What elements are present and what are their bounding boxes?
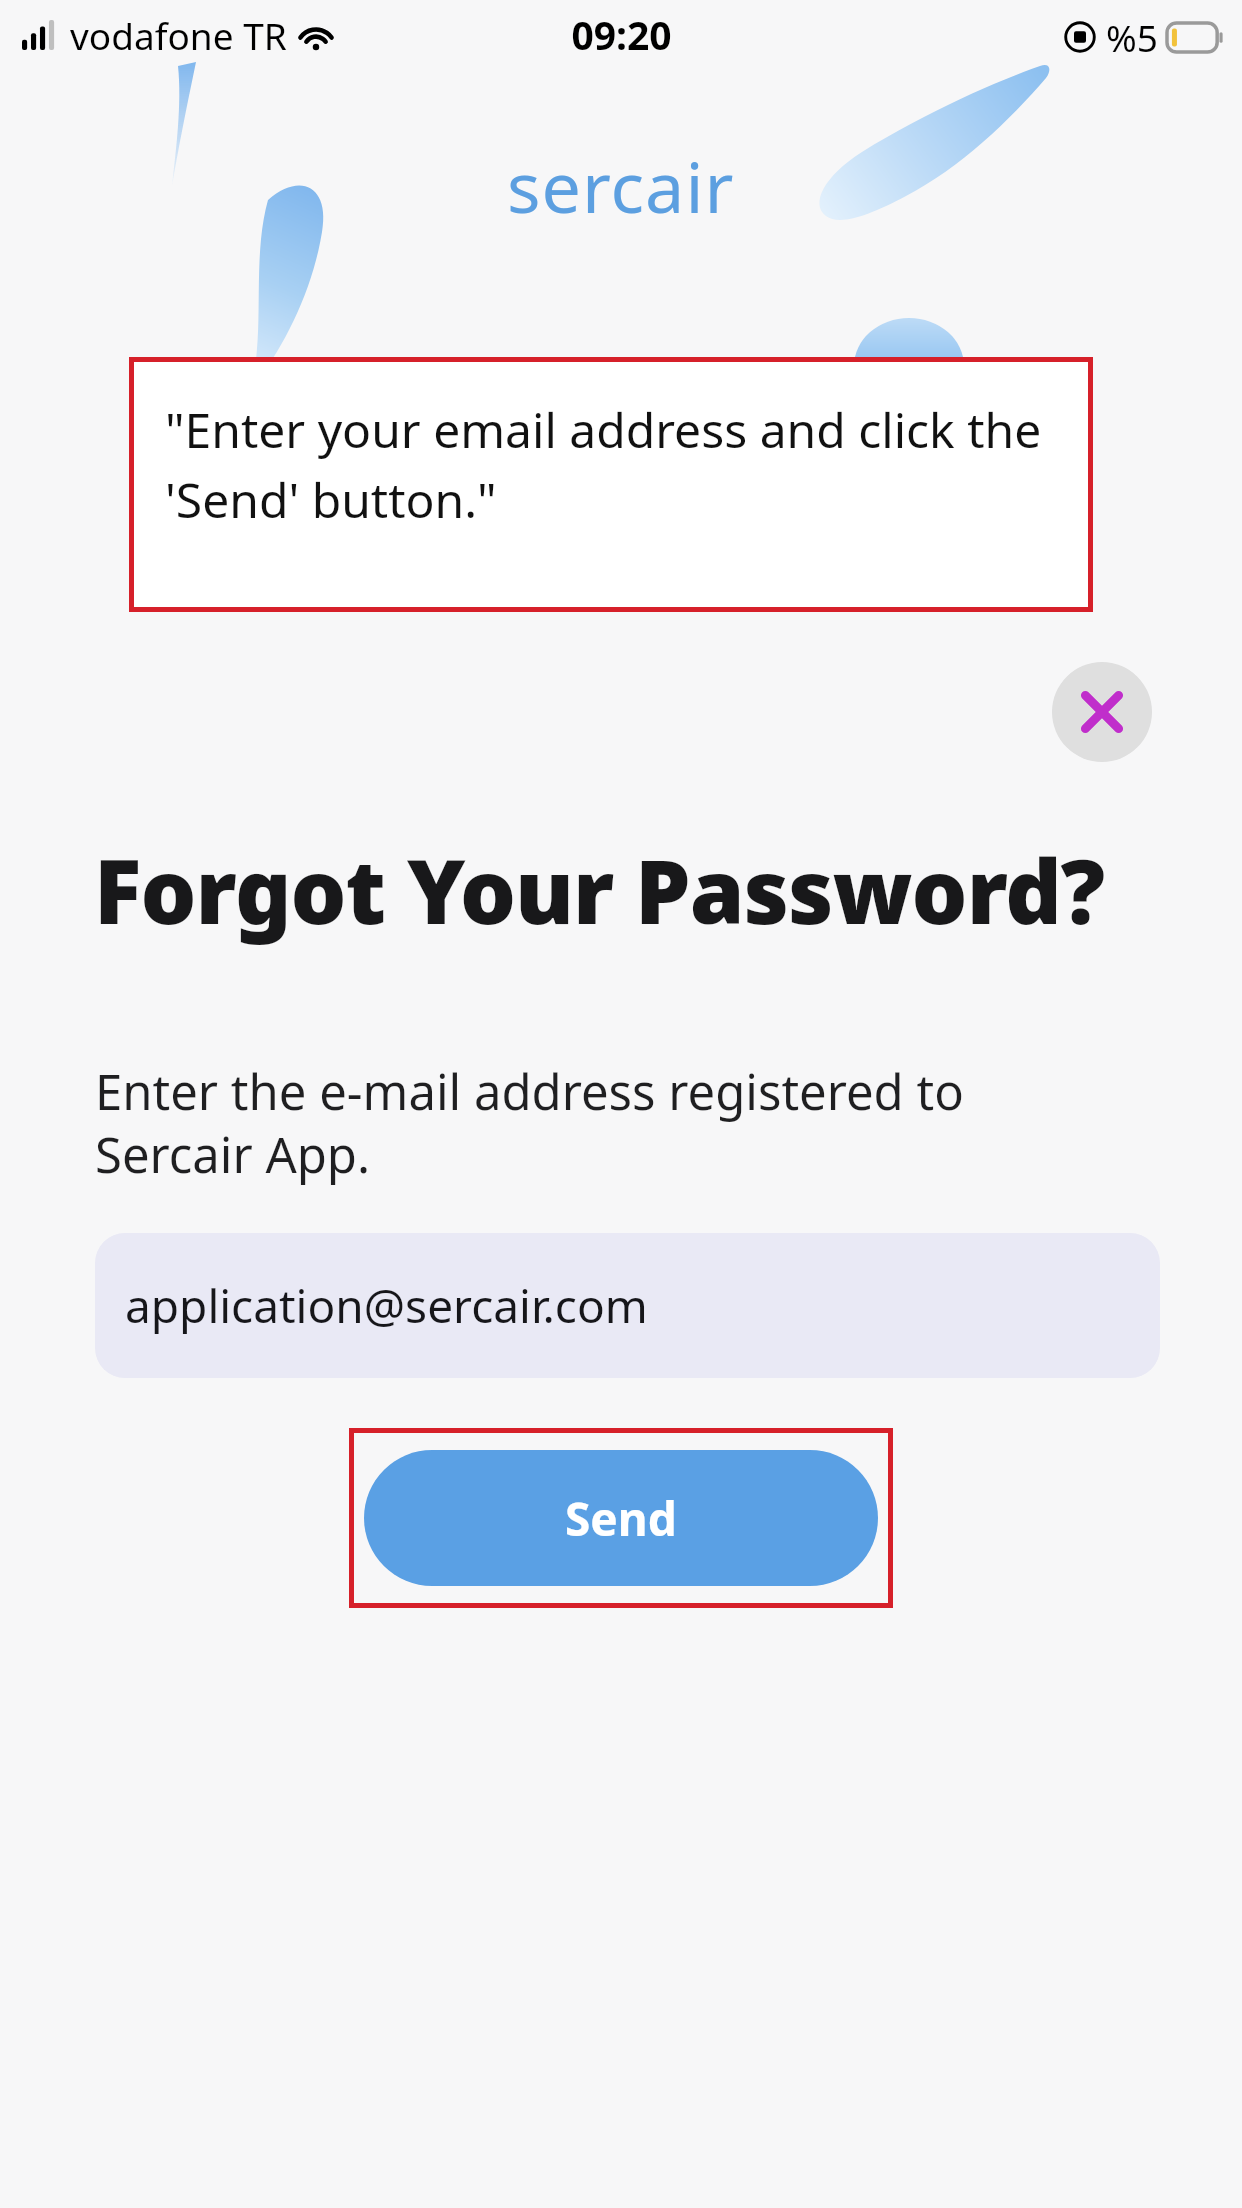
staticText: Send: [565, 1487, 677, 1550]
button[interactable]: "Enter your email address and click the …: [129, 357, 1093, 612]
staticText: application@sercair.com: [125, 1274, 648, 1337]
staticText: "Enter your email address and click the …: [165, 397, 1045, 532]
button[interactable]: application@sercair.com: [95, 1233, 1160, 1378]
staticText: 09:20: [571, 8, 672, 61]
staticText: Enter the e-mail address registered to S…: [95, 1058, 1105, 1187]
staticText: sercair: [507, 138, 735, 233]
staticText: %5: [1106, 12, 1158, 62]
button[interactable]: Send: [364, 1450, 878, 1586]
staticText: vodafone TR: [70, 10, 287, 60]
button[interactable]: Close: [1052, 662, 1152, 762]
staticText: Forgot Your Password?: [94, 830, 1105, 950]
